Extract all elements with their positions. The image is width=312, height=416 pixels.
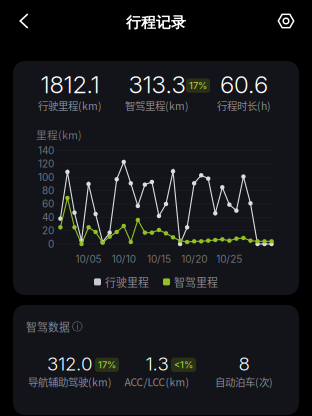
staticText: 8 xyxy=(238,352,249,375)
staticText: 60 xyxy=(42,198,54,210)
staticText: 10/15 xyxy=(147,253,171,265)
staticText: 40 xyxy=(42,211,54,223)
staticText: 行程记录 xyxy=(126,13,186,32)
staticText: 行程时长(h) xyxy=(217,98,271,113)
staticText: 100 xyxy=(38,171,54,183)
staticText: 60.6 xyxy=(220,70,268,99)
staticText: 自动泊车(次) xyxy=(215,374,273,389)
staticText: 17% xyxy=(98,359,116,370)
staticText: 10/10 xyxy=(112,253,136,265)
staticText: 智驾里程 xyxy=(174,274,218,290)
staticText: 17% xyxy=(189,80,207,91)
staticText: 120 xyxy=(38,158,54,170)
staticText: 140 xyxy=(38,145,54,157)
button[interactable]: 设置 xyxy=(267,2,305,40)
staticText: 行驶里程(km) xyxy=(38,98,102,113)
staticText: ⓘ xyxy=(72,320,83,333)
staticText: ACC/LCC(km) xyxy=(124,374,189,389)
staticText: 0 xyxy=(48,238,54,250)
staticText: 313.3 xyxy=(128,70,185,99)
staticText: 智驾数据 xyxy=(26,319,70,335)
staticText: 10/05 xyxy=(76,253,102,265)
staticText: 312.0 xyxy=(47,352,93,375)
staticText: 导航辅助驾驶(km) xyxy=(28,374,112,389)
staticText: 里程(km) xyxy=(36,127,82,142)
staticText: 行驶里程 xyxy=(105,274,149,290)
staticText: 1.3 xyxy=(145,352,168,375)
staticText: 10/20 xyxy=(181,253,207,265)
staticText: 20 xyxy=(42,225,54,237)
staticText: 80 xyxy=(42,185,54,197)
staticText: <1% xyxy=(174,359,193,370)
button[interactable]: 返回 xyxy=(5,2,43,40)
staticText: 1812.1 xyxy=(40,70,99,99)
staticText: 10/25 xyxy=(216,253,242,265)
staticText: 智驾里程(km) xyxy=(125,98,189,113)
